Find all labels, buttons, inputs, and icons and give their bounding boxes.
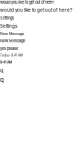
staticText: q (0, 67, 3, 73)
staticText: would you like to get out of here? (0, 8, 72, 13)
staticText: Settings (0, 16, 14, 20)
staticText: q (0, 76, 4, 83)
staticText: 9:41 AM (0, 60, 12, 64)
staticText: New Message (0, 39, 25, 43)
staticText: yes please (0, 46, 18, 51)
staticText: Settings (0, 23, 17, 29)
staticText: would you like to get out of here? (0, 0, 54, 5)
staticText: New Message (0, 32, 24, 36)
staticText: Today 9:41 AM (0, 54, 23, 57)
